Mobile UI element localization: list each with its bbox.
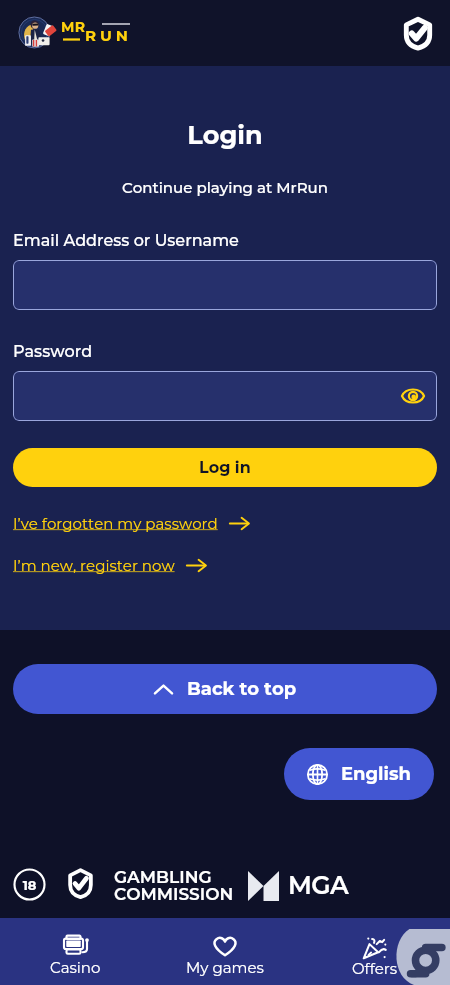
button[interactable]: MrRun home [10,7,136,59]
staticText: Casino [50,958,101,976]
staticText: My games [186,958,264,976]
button[interactable]: Show password [396,379,430,413]
staticText: COMMISSION [114,884,234,905]
staticText: English [341,763,411,785]
staticText: RUN [85,26,132,44]
staticText: MR [61,18,86,35]
staticText: GAMBLING [114,867,212,888]
button[interactable]: Offers [300,918,450,985]
staticText: Back to top [187,678,297,700]
staticText: Offers [352,959,398,977]
button[interactable]: Casino [0,918,150,985]
button[interactable]: Log in [13,448,437,487]
staticText: Login [0,119,450,150]
staticText: Email Address or Username [13,231,239,251]
staticText: 18 [13,877,46,901]
button[interactable]: Secure connection [396,11,440,55]
button[interactable]: I’ve forgotten my password [13,514,250,532]
button[interactable]: I’m new, register now [13,556,207,574]
button[interactable]: Email Address or Username field [13,260,437,310]
button[interactable]: Password field [13,371,437,421]
staticText: Log in [199,458,251,478]
staticText: Password [13,342,93,362]
button[interactable]: English [284,748,434,800]
staticText: I’ve forgotten my password [13,514,218,532]
button[interactable]: Back to top [13,664,437,714]
button[interactable]: My games [150,918,300,985]
staticText: I’m new, register now [13,556,175,574]
staticText: Continue playing at MrRun [0,178,450,196]
staticText: MGA [288,870,349,900]
button[interactable]: Live chat support [392,929,450,985]
